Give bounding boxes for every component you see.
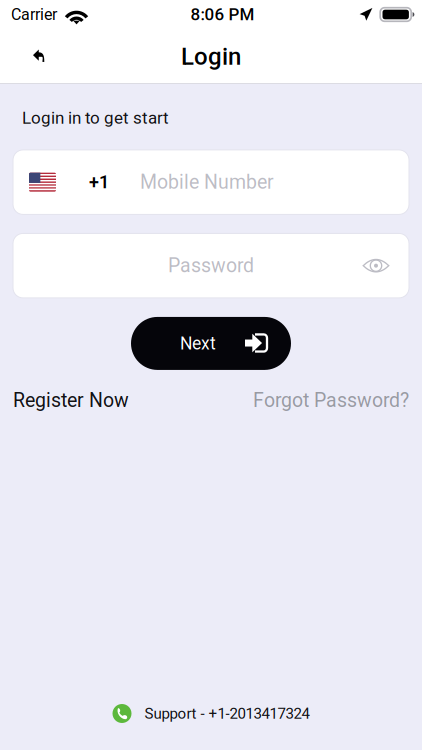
staticText: Support - +1-2013417324 [144, 705, 309, 722]
staticText: Password [168, 254, 254, 277]
staticText: Forgot Password? [253, 389, 409, 412]
staticText: Register Now [13, 389, 129, 412]
staticText: Carrier [11, 5, 57, 24]
button[interactable]: Register Now [13, 389, 129, 412]
staticText: Mobile Number [140, 171, 274, 194]
staticText: Next [180, 333, 216, 354]
button[interactable]: Show password [356, 246, 396, 286]
button[interactable]: Forgot Password? [253, 389, 409, 412]
button[interactable]: Next [131, 317, 291, 370]
button[interactable]: Back [17, 34, 61, 78]
button[interactable]: Support - +1-2013417324 [112, 704, 309, 723]
staticText: 8:06 PM [191, 4, 255, 24]
staticText: Login in to get start [22, 108, 169, 128]
staticText: +1 [89, 172, 109, 193]
staticText: Login [181, 42, 241, 70]
